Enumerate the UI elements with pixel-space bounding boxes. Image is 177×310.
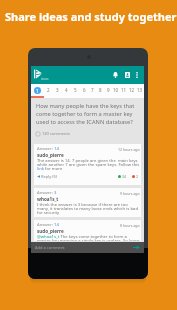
button[interactable]: Reply (5) xyxy=(37,174,58,179)
staticText: 5 xyxy=(74,87,77,93)
staticText: 4 xyxy=(65,87,68,93)
staticText: 9 xyxy=(107,87,110,93)
staticText: 14 xyxy=(54,222,59,228)
button[interactable]: More options xyxy=(132,70,142,80)
button[interactable]: 7 xyxy=(88,84,96,98)
button[interactable]: Contacts xyxy=(122,70,132,80)
button[interactable]: 9 xyxy=(104,84,112,98)
other: Send xyxy=(133,245,140,250)
button[interactable]: 1 xyxy=(31,84,44,98)
staticText: Answer: xyxy=(37,222,54,228)
staticText: 3 xyxy=(56,87,59,93)
button[interactable]: 4 xyxy=(62,84,71,98)
button[interactable]: 6 xyxy=(80,84,88,98)
staticText: 1 xyxy=(36,88,39,94)
staticText: 120 comments xyxy=(42,131,70,136)
staticText: 7 xyxy=(91,87,94,93)
button[interactable]: 2 xyxy=(44,84,53,98)
staticText: Share ideas and study together xyxy=(5,9,177,24)
staticText: The answer is 14. 7 people are given the… xyxy=(37,158,140,172)
staticText: cisco xyxy=(41,77,49,81)
button[interactable]: How many people have the keys that come … xyxy=(31,98,144,144)
staticText: Answer: xyxy=(37,190,54,196)
staticText: 12 xyxy=(129,87,135,93)
staticText: Add a comment xyxy=(35,245,65,250)
staticText: I think the answer is 3 because if there… xyxy=(37,202,140,216)
staticText: 14 xyxy=(54,146,59,152)
staticText: sudo_pierre xyxy=(37,228,64,234)
staticText: @whoa1s_t The keys come together to form… xyxy=(37,234,140,241)
staticText: Answer: xyxy=(37,146,54,152)
staticText: 34 xyxy=(122,174,127,179)
button[interactable]: Answer: xyxy=(34,144,141,185)
staticText: 13 xyxy=(137,87,143,93)
staticText: sudo_pierre xyxy=(37,152,64,158)
button[interactable]: Answer: xyxy=(34,188,141,217)
staticText: Reply (5) xyxy=(41,174,58,179)
staticText: 10 xyxy=(113,87,119,93)
staticText: 2 xyxy=(136,174,139,179)
staticText: How many people have the keys that come … xyxy=(36,102,139,126)
staticText: 8 hours ago xyxy=(120,223,140,228)
staticText: whoa1s_t xyxy=(37,196,59,202)
staticText: 8 xyxy=(99,87,102,93)
button[interactable]: Notifications xyxy=(110,70,120,80)
button[interactable]: Add a comment xyxy=(31,242,144,253)
staticText: 9 hours ago xyxy=(120,191,140,196)
button[interactable]: Answer: xyxy=(34,220,141,241)
button[interactable]: 8 xyxy=(96,84,104,98)
button[interactable]: 3 xyxy=(53,84,62,98)
staticText: 12 hours ago xyxy=(118,147,140,152)
button[interactable]: 10 xyxy=(112,84,120,98)
staticText: 2 xyxy=(47,87,50,93)
staticText: 11 xyxy=(121,87,127,93)
staticText: 3 xyxy=(54,190,57,196)
button[interactable]: 5 xyxy=(71,84,80,98)
staticText: 6 xyxy=(83,87,86,93)
button[interactable]: 12 xyxy=(128,84,136,98)
button[interactable]: 13 xyxy=(136,84,144,98)
button[interactable]: 11 xyxy=(120,84,128,98)
